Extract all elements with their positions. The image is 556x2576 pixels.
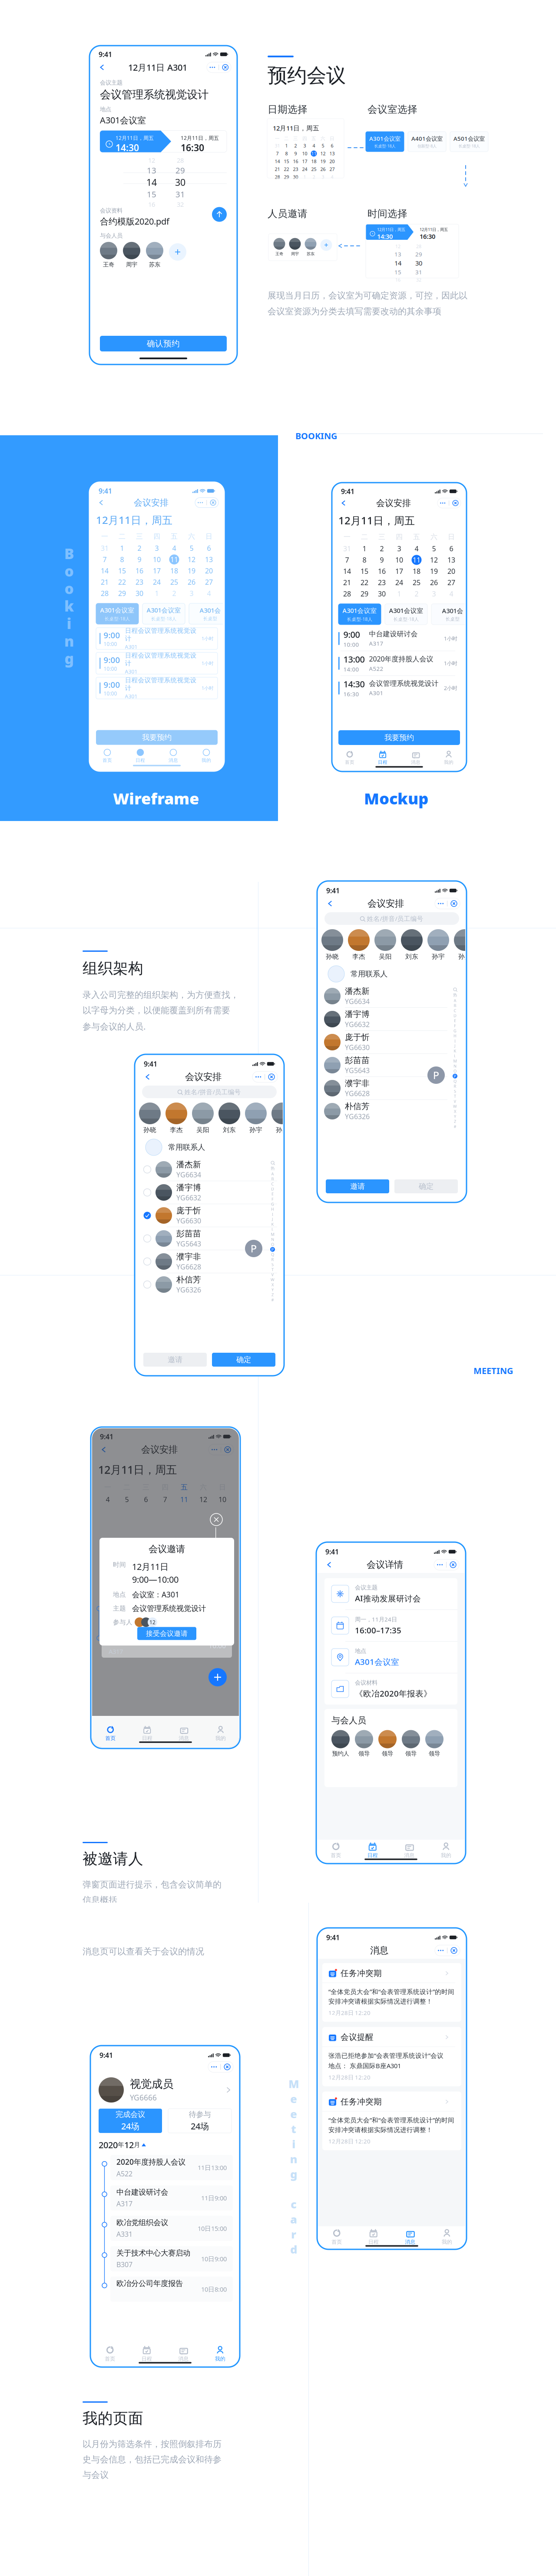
button[interactable]: 返回 bbox=[141, 1070, 154, 1083]
button[interactable]: 更多 bbox=[207, 62, 231, 73]
button[interactable]: A301会 bbox=[189, 603, 232, 624]
button[interactable]: 9:00 bbox=[96, 628, 218, 649]
button[interactable]: A301会议室 bbox=[366, 132, 404, 152]
button[interactable]: 更多 bbox=[434, 1559, 459, 1570]
button[interactable]: 日程 bbox=[129, 1726, 165, 1741]
button[interactable]: 13:00 bbox=[338, 651, 460, 676]
button[interactable]: A301会议室 bbox=[142, 603, 185, 624]
button[interactable]: 9:00 bbox=[96, 652, 218, 674]
button[interactable]: 日程 bbox=[355, 2229, 392, 2245]
staticText: A301会议室 bbox=[343, 606, 377, 615]
button[interactable]: 庞于忻 bbox=[142, 1204, 277, 1227]
button[interactable]: 接受会议邀请 bbox=[137, 1627, 196, 1640]
button[interactable]: 消息 bbox=[391, 1842, 428, 1859]
button[interactable]: 首页 bbox=[92, 1726, 129, 1741]
button[interactable]: 会议提醒 bbox=[322, 2027, 461, 2086]
button[interactable]: 姓名/拼音/员工编号 bbox=[324, 912, 459, 925]
button[interactable]: A301会议室 bbox=[338, 604, 381, 625]
button[interactable]: 返回 bbox=[338, 497, 350, 509]
staticText: 12月28日 12:20 bbox=[328, 2137, 371, 2145]
button[interactable]: 潘杰新 bbox=[324, 985, 460, 1008]
staticText: YG6628 bbox=[176, 1262, 201, 1271]
button[interactable]: 关闭 bbox=[210, 1513, 222, 1526]
button[interactable]: 确认预约 bbox=[100, 336, 227, 351]
staticText: 消息 bbox=[179, 1735, 189, 1741]
staticText: 物产双周推进会 bbox=[109, 1635, 166, 1645]
button[interactable]: A301会 bbox=[431, 604, 474, 625]
button[interactable]: 庞于忻 bbox=[324, 1031, 460, 1054]
button[interactable]: 关于技术中心大赛启动 bbox=[110, 2246, 233, 2271]
button[interactable]: 消息 bbox=[165, 1726, 202, 1741]
button[interactable]: 消息 bbox=[165, 2346, 202, 2362]
button[interactable]: 我要预约 bbox=[338, 730, 460, 745]
button[interactable]: 确定 bbox=[212, 1353, 275, 1367]
button[interactable]: 任务冲突期 bbox=[322, 2092, 461, 2150]
button[interactable]: 9:00 bbox=[96, 677, 218, 699]
button[interactable]: 欧冶党组织会议 bbox=[110, 2216, 233, 2241]
button[interactable]: 消息 bbox=[399, 751, 432, 765]
staticText: 三 bbox=[142, 1483, 149, 1492]
button[interactable]: A401会议室 bbox=[408, 132, 446, 152]
staticText: 六 bbox=[200, 1483, 207, 1492]
button[interactable]: 我要预约 bbox=[96, 730, 218, 745]
button[interactable]: 首页 bbox=[92, 2346, 128, 2362]
button[interactable]: 潘宇博 bbox=[142, 1181, 277, 1204]
button[interactable]: 日程 bbox=[366, 751, 399, 765]
button[interactable]: 潘宇博 bbox=[324, 1008, 460, 1031]
button[interactable]: 2020年度持股人会议 bbox=[110, 2155, 233, 2180]
button[interactable]: 濮宇非 bbox=[324, 1077, 460, 1100]
button[interactable]: 我的 bbox=[432, 751, 465, 765]
button[interactable]: 首页 bbox=[318, 2229, 355, 2245]
button[interactable]: 彭苗苗 bbox=[142, 1227, 277, 1250]
button[interactable]: 返回 bbox=[96, 61, 109, 74]
button[interactable]: 上传资料 bbox=[212, 207, 227, 222]
button[interactable]: 我的 bbox=[428, 1842, 464, 1859]
button[interactable]: 日程 bbox=[354, 1842, 391, 1859]
button[interactable]: 视觉成员 bbox=[99, 2077, 232, 2103]
button[interactable]: 邀请 bbox=[143, 1353, 207, 1367]
button[interactable]: 任务冲突期 bbox=[322, 1963, 461, 2022]
button[interactable]: 首页 bbox=[333, 751, 366, 765]
button[interactable]: 完成会议 bbox=[99, 2109, 162, 2133]
staticText: 三 bbox=[136, 532, 143, 541]
button[interactable]: 添加与会人员 bbox=[169, 243, 186, 267]
button[interactable]: 潘杰新 bbox=[142, 1158, 277, 1181]
button[interactable]: 返回 bbox=[95, 497, 107, 509]
button[interactable]: 更多 bbox=[435, 1945, 460, 1956]
button[interactable]: 朴信芳 bbox=[324, 1100, 460, 1122]
button[interactable]: 9:00 bbox=[338, 626, 460, 651]
staticText: G bbox=[271, 1201, 274, 1207]
button[interactable]: 消息 bbox=[392, 2229, 429, 2245]
button[interactable]: 我的 bbox=[429, 2229, 465, 2245]
button[interactable]: 中台建设研讨会 bbox=[110, 2185, 233, 2211]
staticText: 4 bbox=[207, 589, 211, 598]
button[interactable]: 14:30 bbox=[338, 676, 460, 701]
button[interactable]: 待参与 bbox=[168, 2109, 232, 2133]
button[interactable]: A501会议室 bbox=[450, 132, 488, 152]
button[interactable]: 濮宇非 bbox=[142, 1250, 277, 1273]
button[interactable]: 更多 bbox=[252, 1071, 278, 1082]
button[interactable]: 邀请 bbox=[326, 1179, 389, 1193]
button[interactable]: 我的 bbox=[202, 1726, 239, 1741]
button[interactable]: A301会议室 bbox=[385, 604, 427, 625]
button[interactable]: 新建会议 bbox=[208, 1668, 227, 1686]
button[interactable]: 返回 bbox=[324, 897, 337, 910]
button[interactable]: 姓名/拼音/员工编号 bbox=[142, 1086, 277, 1098]
button[interactable]: 日程 bbox=[128, 2346, 165, 2362]
button[interactable]: 彭苗苗 bbox=[324, 1054, 460, 1077]
button[interactable]: 更多 bbox=[208, 2061, 233, 2072]
staticText: 14 bbox=[343, 567, 351, 576]
button[interactable]: 欧冶分公司年度报告 bbox=[110, 2277, 233, 2302]
staticText: e bbox=[290, 2091, 297, 2106]
button[interactable]: 返回 bbox=[323, 1558, 336, 1571]
staticText: 15 bbox=[147, 189, 156, 200]
button[interactable]: A301会议室 bbox=[96, 603, 139, 624]
button[interactable]: 我的 bbox=[202, 2346, 238, 2362]
button[interactable]: 更多 bbox=[437, 498, 461, 508]
button[interactable]: 确定 bbox=[394, 1179, 458, 1193]
button[interactable]: 首页 bbox=[318, 1842, 354, 1859]
staticText: 地点 bbox=[113, 1591, 126, 1598]
button[interactable]: 更多 bbox=[435, 898, 460, 909]
button[interactable]: 更多 bbox=[195, 498, 218, 508]
button[interactable]: 朴信芳 bbox=[142, 1273, 277, 1296]
